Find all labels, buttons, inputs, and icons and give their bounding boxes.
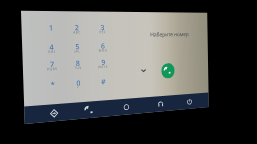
staticText: 1 [49, 23, 53, 33]
staticText: DEF [99, 30, 106, 34]
button[interactable]: 7 [38, 56, 65, 75]
staticText: ABC [73, 30, 81, 34]
staticText: WXYZ [98, 65, 108, 69]
staticText: TUV [74, 66, 82, 70]
button[interactable]: Call [161, 63, 175, 79]
staticText: + [76, 86, 80, 90]
button[interactable]: Media [152, 96, 168, 112]
button[interactable]: 8 [64, 55, 90, 74]
button[interactable]: Backspace [135, 61, 151, 79]
staticText: # [101, 77, 106, 86]
button[interactable]: 5 [64, 38, 90, 57]
button[interactable]: * [39, 76, 65, 96]
staticText: 9 [101, 58, 105, 67]
staticText: 8 [76, 58, 80, 68]
button[interactable]: 4 [37, 39, 64, 58]
button[interactable]: 9 [90, 54, 115, 73]
staticText: 2 [75, 23, 79, 32]
staticText: MNO [98, 48, 108, 53]
button[interactable]: 2 [63, 20, 89, 38]
button[interactable]: 6 [90, 38, 114, 56]
button[interactable]: Phone [80, 101, 98, 119]
button[interactable]: Power [182, 93, 196, 109]
staticText: 4 [49, 42, 54, 52]
button[interactable]: 3 [90, 20, 114, 37]
button[interactable]: Home [117, 98, 134, 115]
staticText: Наберите номер [150, 30, 189, 38]
staticText: JKL [74, 49, 81, 53]
staticText: 6 [101, 41, 105, 51]
staticText: PQRS [47, 67, 58, 71]
staticText: 5 [75, 42, 79, 51]
staticText: 3 [100, 23, 104, 32]
button[interactable]: 1 [37, 20, 64, 38]
staticText: GHI [47, 50, 56, 54]
staticText: 0 [76, 78, 81, 88]
button[interactable]: # [91, 73, 115, 92]
button[interactable]: Navigation [44, 104, 63, 122]
staticText: 7 [50, 59, 54, 69]
staticText: * [50, 80, 55, 90]
button[interactable]: 0 [65, 75, 91, 94]
